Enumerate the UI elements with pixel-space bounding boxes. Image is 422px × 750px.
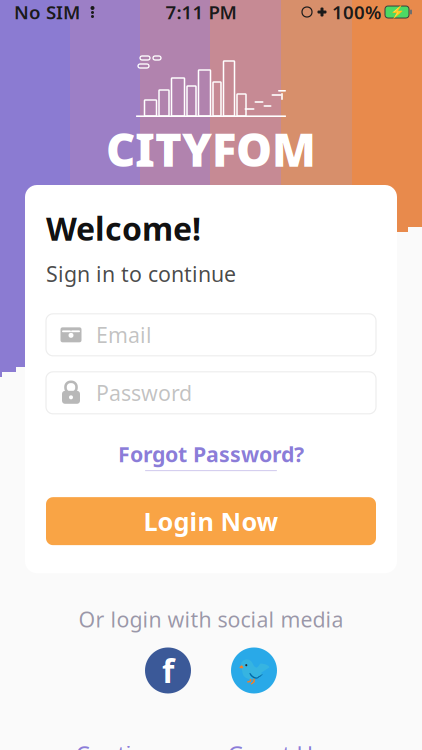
staticText: CITYFOM [106, 119, 316, 179]
staticText: ⚡ [389, 5, 404, 19]
button[interactable]: Forgot Password? [46, 440, 376, 471]
staticText: 100% [332, 0, 381, 24]
staticText: Continue as a Guest User [75, 739, 346, 750]
staticText: f [162, 649, 174, 692]
staticText: No SIM [14, 0, 80, 24]
staticText: Welcome! [46, 207, 201, 249]
staticText: Or login with social media [78, 605, 343, 633]
staticText: D I S C O V E R A N D W I N [136, 182, 285, 196]
staticText: Sign in to continue [46, 259, 236, 288]
button[interactable]: Sign in with Facebook [145, 647, 191, 693]
staticText: Email [96, 321, 152, 349]
staticText: 🐦 [236, 654, 271, 686]
staticText: Login Now [143, 504, 278, 538]
button[interactable]: Login Now [46, 497, 376, 545]
button[interactable]: Sign in with Twitter [231, 647, 277, 693]
staticText: Password [96, 379, 192, 407]
staticText: 7:11 PM [165, 0, 236, 24]
staticText: Forgot Password? [118, 440, 304, 468]
button[interactable]: Continue as a Guest User [0, 733, 422, 750]
